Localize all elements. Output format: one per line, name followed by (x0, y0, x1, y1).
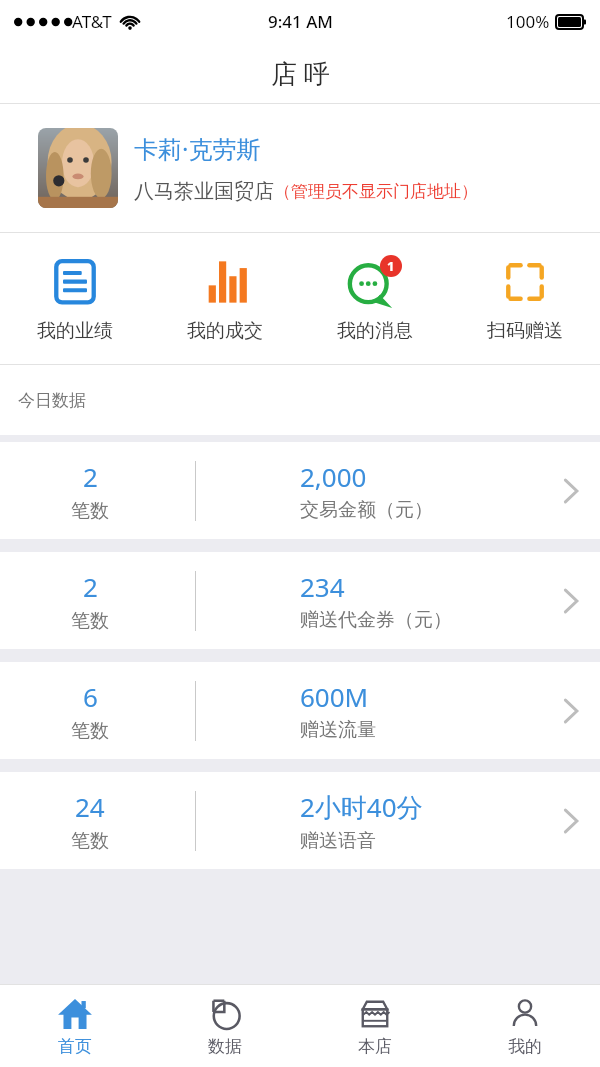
button[interactable]: 卡莉·克劳斯 (0, 104, 600, 232)
staticText: 交易金额（元） (300, 498, 433, 522)
button[interactable]: 首页 (0, 985, 150, 1067)
button[interactable]: 24 (0, 772, 600, 869)
staticText: 100% (506, 10, 550, 33)
staticText: 赠送代金券（元） (300, 608, 452, 632)
button[interactable]: 我的 (450, 985, 600, 1067)
staticText: 1 (387, 257, 395, 275)
staticText: 234 (300, 569, 345, 604)
staticText: 600M (300, 679, 369, 714)
button[interactable]: 我的成交 (150, 233, 300, 364)
button[interactable]: 数据 (150, 985, 300, 1067)
staticText: 我的 (508, 1036, 542, 1057)
staticText: 我的消息 (337, 319, 413, 343)
staticText: 我的业绩 (37, 319, 113, 343)
button[interactable]: 本店 (300, 985, 450, 1067)
staticText: 本店 (358, 1036, 392, 1057)
button[interactable]: 1 (300, 233, 450, 364)
staticText: 2小时40分 (300, 789, 423, 825)
staticText: 2,000 (300, 459, 367, 494)
staticText: （管理员不显示门店地址） (274, 181, 478, 202)
staticText: 我的成交 (187, 319, 263, 343)
button[interactable]: 2 (0, 442, 600, 539)
staticText: 9:41 AM (268, 10, 333, 33)
staticText: 笔数 (71, 829, 109, 853)
staticText: 赠送语音 (300, 829, 376, 853)
staticText: 首页 (58, 1036, 92, 1057)
staticText: AT&T (72, 10, 112, 33)
button[interactable]: 我的业绩 (0, 233, 150, 364)
staticText: 24 (75, 789, 105, 824)
staticText: 2 (83, 459, 98, 494)
staticText: 笔数 (71, 719, 109, 743)
staticText: 今日数据 (18, 390, 86, 411)
staticText: 笔数 (71, 609, 109, 633)
staticText: 数据 (208, 1036, 242, 1057)
staticText: 卡莉·克劳斯 (134, 132, 261, 165)
staticText: 笔数 (71, 499, 109, 523)
staticText: 店 呼 (271, 55, 330, 91)
button[interactable]: 2 (0, 552, 600, 649)
staticText: 赠送流量 (300, 718, 376, 742)
staticText: 扫码赠送 (487, 319, 563, 343)
staticText: 2 (83, 569, 98, 604)
staticText: 6 (83, 679, 98, 714)
button[interactable]: 扫码赠送 (450, 233, 600, 364)
staticText: 八马茶业国贸店 (134, 179, 274, 204)
button[interactable]: 6 (0, 662, 600, 759)
